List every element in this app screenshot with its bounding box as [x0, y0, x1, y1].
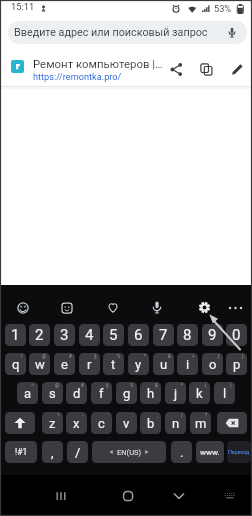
button[interactable]: 0: [226, 324, 247, 346]
staticText: /: [181, 413, 183, 418]
button[interactable]: d: [66, 382, 87, 404]
button[interactable]: s: [42, 382, 63, 404]
button[interactable]: !#1: [5, 441, 37, 463]
button[interactable]: 2: [29, 324, 50, 346]
staticText: }: [242, 354, 244, 359]
staticText: n: [172, 416, 180, 431]
staticText: ~: [31, 383, 35, 388]
staticText: !: [58, 413, 60, 418]
staticText: !#1: [15, 447, 28, 457]
button[interactable]: 3: [54, 324, 75, 346]
button[interactable]: 9: [202, 324, 223, 346]
staticText: 8: [183, 326, 192, 344]
staticText: @: [42, 354, 47, 359]
staticText: EN(US): [117, 448, 142, 457]
button[interactable]: 1: [5, 324, 26, 346]
button[interactable]: ,: [42, 441, 63, 463]
button[interactable]: .: [171, 441, 192, 463]
staticText: Ремонт компьютеров |…: [33, 57, 163, 70]
staticText: c: [98, 416, 105, 431]
button[interactable]: EN(US): [92, 441, 166, 463]
button[interactable]: 5: [103, 324, 124, 346]
staticText: ?: [205, 413, 208, 418]
staticText: 6: [134, 326, 143, 344]
button[interactable]: i: [177, 353, 198, 375]
button[interactable]: n: [165, 412, 186, 434]
staticText: 1: [11, 326, 20, 344]
button[interactable]: www.: [196, 441, 224, 463]
button[interactable]: [217, 412, 247, 434]
button[interactable]: h: [140, 382, 161, 404]
staticText: *: [181, 383, 183, 388]
staticText: ): [230, 383, 232, 388]
staticText: 15:11: [11, 1, 35, 12]
button[interactable]: y: [128, 353, 149, 375]
button[interactable]: 6: [128, 324, 149, 346]
button[interactable]: o: [202, 353, 223, 375]
button[interactable]: 8: [177, 324, 198, 346]
staticText: g: [123, 386, 131, 401]
staticText: h: [147, 386, 155, 401]
button[interactable]: Введите адрес или поисковый запрос: [8, 21, 247, 44]
button[interactable]: t: [103, 353, 124, 375]
button[interactable]: m: [190, 412, 211, 434]
button[interactable]: [52, 489, 70, 503]
staticText: #: [69, 354, 72, 359]
staticText: 7: [159, 326, 168, 344]
button[interactable]: v: [116, 412, 137, 434]
button[interactable]: l: [214, 382, 235, 404]
button[interactable]: r: [79, 353, 100, 375]
staticText: -: [82, 413, 84, 418]
button[interactable]: [119, 489, 137, 503]
staticText: $: [106, 383, 109, 388]
button[interactable]: z: [42, 412, 63, 434]
button[interactable]: [222, 490, 238, 503]
staticText: x: [73, 416, 80, 431]
staticText: .: [180, 445, 184, 460]
staticText: https://remontka.pro/: [33, 71, 122, 82]
button[interactable]: /: [67, 441, 88, 463]
staticText: ,: [51, 445, 54, 460]
button[interactable]: x: [66, 412, 87, 434]
staticText: %: [117, 354, 121, 359]
staticText: t: [111, 357, 116, 372]
button[interactable]: [170, 489, 188, 503]
button[interactable]: 4: [79, 324, 100, 346]
staticText: 53%: [214, 3, 232, 14]
button[interactable]: u: [153, 353, 174, 375]
button[interactable]: k: [189, 382, 210, 404]
staticText: y: [135, 357, 142, 372]
button[interactable]: 7: [153, 324, 174, 346]
staticText: ^: [144, 354, 146, 359]
button[interactable]: p: [226, 353, 247, 375]
button[interactable]: b: [140, 412, 161, 434]
button[interactable]: e: [54, 353, 75, 375]
staticText: <: [192, 354, 195, 359]
button[interactable]: w: [29, 353, 50, 375]
staticText: 9: [208, 326, 217, 344]
button[interactable]: q: [5, 353, 26, 375]
staticText: j: [174, 386, 178, 401]
staticText: ;: [157, 413, 158, 418]
staticText: :: [132, 413, 134, 418]
staticText: z: [49, 416, 56, 431]
button[interactable]: a: [17, 382, 38, 404]
button[interactable]: f: [91, 382, 112, 404]
button[interactable]: j: [165, 382, 186, 404]
staticText: Переход: [228, 449, 250, 455]
button[interactable]: Ремонт компьютеров |…: [0, 47, 252, 86]
button[interactable]: [5, 412, 35, 434]
staticText: ': [108, 413, 109, 418]
staticText: 5: [109, 326, 118, 344]
staticText: q: [12, 357, 20, 372]
staticText: v: [123, 416, 130, 431]
staticText: (: [205, 383, 207, 388]
staticText: 4: [85, 326, 94, 344]
button[interactable]: c: [91, 412, 112, 434]
staticText: b: [147, 416, 155, 431]
button[interactable]: Переход: [227, 441, 251, 463]
staticText: 0: [232, 326, 241, 344]
staticText: @: [55, 383, 60, 388]
button[interactable]: g: [116, 382, 137, 404]
staticText: www.: [200, 448, 220, 457]
